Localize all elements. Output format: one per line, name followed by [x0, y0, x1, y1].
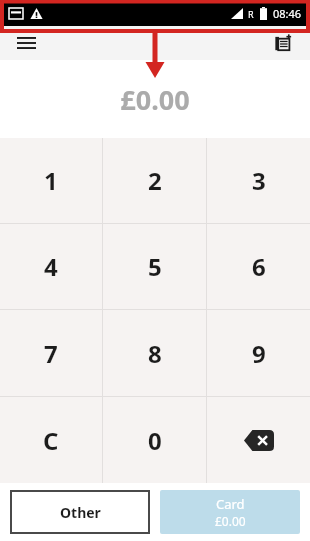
button[interactable]: Backspace: [207, 397, 310, 483]
staticText: 9: [252, 337, 266, 370]
button[interactable]: 7: [0, 310, 102, 396]
button[interactable]: 5: [103, 224, 206, 309]
staticText: 4: [44, 250, 58, 283]
staticText: £0.00: [120, 81, 190, 118]
staticText: 08:46: [273, 6, 302, 21]
button[interactable]: 1: [0, 138, 102, 223]
staticText: C: [43, 424, 59, 457]
staticText: 2: [148, 164, 162, 197]
button[interactable]: Other: [10, 490, 150, 534]
staticText: 8: [148, 337, 162, 370]
staticText: 7: [44, 337, 58, 370]
staticText: 0: [148, 424, 162, 457]
staticText: 1: [44, 164, 58, 197]
button[interactable]: £0.00: [0, 60, 310, 138]
button[interactable]: 8: [103, 310, 206, 396]
button[interactable]: C: [0, 397, 102, 483]
staticText: 6: [252, 250, 266, 283]
button[interactable]: Menu: [10, 27, 42, 59]
button[interactable]: 0: [103, 397, 206, 483]
staticText: R: [248, 8, 254, 20]
button[interactable]: 9: [207, 310, 310, 396]
staticText: £0.00: [215, 513, 246, 529]
button[interactable]: Card: [160, 490, 300, 534]
staticText: 3: [252, 164, 266, 197]
staticText: 5: [148, 250, 162, 283]
button[interactable]: New sale: [268, 27, 300, 59]
button[interactable]: 6: [207, 224, 310, 309]
button[interactable]: 2: [103, 138, 206, 223]
staticText: Other: [60, 503, 101, 522]
button[interactable]: 4: [0, 224, 102, 309]
button[interactable]: 3: [207, 138, 310, 223]
staticText: Card: [216, 495, 245, 513]
